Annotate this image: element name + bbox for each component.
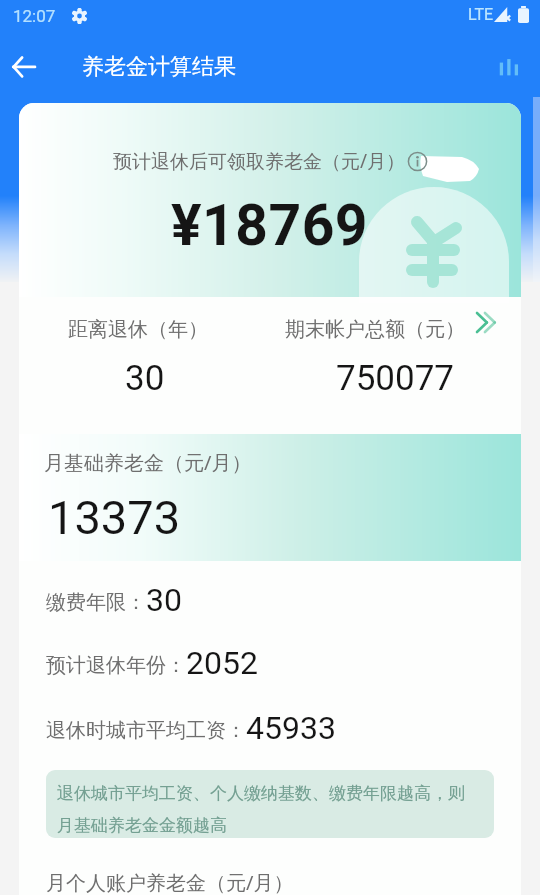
staticText: 缴费年限：	[46, 590, 146, 615]
staticText: 30	[125, 358, 165, 399]
staticText: 期末帐户总额（元）	[285, 317, 465, 342]
staticText: 13373	[48, 490, 181, 545]
staticText: LTE	[468, 5, 494, 24]
button[interactable]: View details	[462, 299, 508, 345]
button[interactable]: 退休城市平均工资、个人缴纳基数、缴费年限越高，则 月基础养老金金额越高	[46, 770, 494, 838]
staticText: 月基础养老金（元/月）	[44, 449, 252, 476]
staticText: 750077	[336, 358, 455, 399]
staticText: ¥18769	[171, 192, 369, 259]
staticText: 月个人账户养老金（元/月）	[46, 869, 294, 895]
staticText: 退休时城市平均工资：	[46, 718, 246, 743]
staticText: 退休城市平均工资、个人缴纳基数、缴费年限越高，则 月基础养老金金额越高	[57, 783, 465, 836]
button[interactable]: Statistics chart	[478, 36, 540, 97]
staticText: 30	[146, 581, 182, 619]
staticText: 预计退休后可领取养老金（元/月）	[113, 148, 406, 174]
button[interactable]: Back	[0, 36, 47, 97]
staticText: 12:07	[13, 6, 56, 26]
staticText: 预计退休年份：	[46, 653, 186, 678]
staticText: 养老金计算结果	[82, 53, 236, 81]
staticText: 距离退休（年）	[68, 317, 208, 342]
staticText: 45933	[246, 709, 336, 747]
staticText: 2052	[186, 644, 258, 682]
